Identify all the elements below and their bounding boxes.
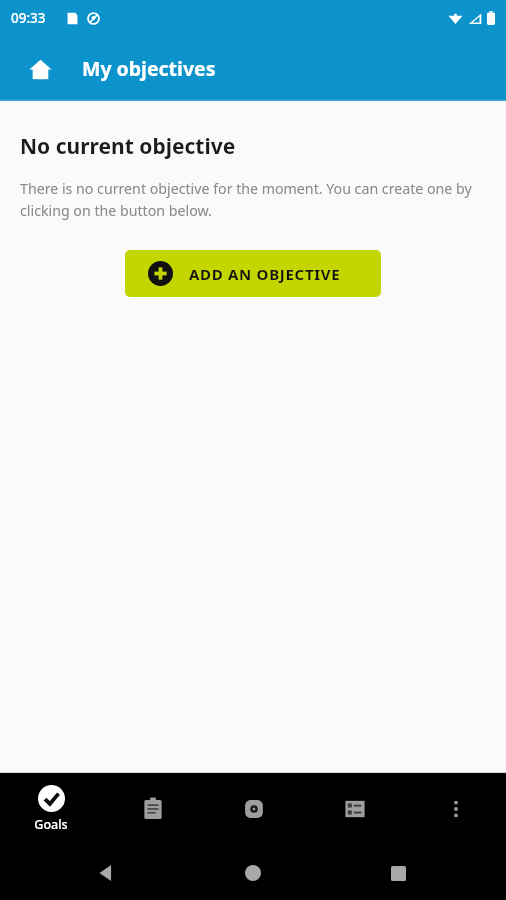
staticText: My objectives — [82, 55, 216, 82]
button[interactable]: Recent apps — [378, 853, 418, 893]
button[interactable]: Capture — [203, 773, 304, 845]
button[interactable]: Home — [22, 51, 58, 87]
button[interactable]: More options — [405, 773, 506, 845]
staticText: ADD AN OBJECTIVE — [189, 264, 341, 284]
button[interactable]: Goals — [0, 773, 102, 845]
button[interactable]: List — [304, 773, 405, 845]
button[interactable]: Assignments — [102, 773, 203, 845]
button[interactable]: ADD AN OBJECTIVE — [125, 250, 381, 297]
staticText: No current objective — [20, 132, 236, 161]
staticText: 09:33 — [11, 9, 46, 27]
button[interactable]: Home — [233, 853, 273, 893]
staticText: There is no current objective for the mo… — [20, 179, 488, 220]
button[interactable]: Back — [86, 853, 126, 893]
staticText: Goals — [34, 816, 68, 833]
